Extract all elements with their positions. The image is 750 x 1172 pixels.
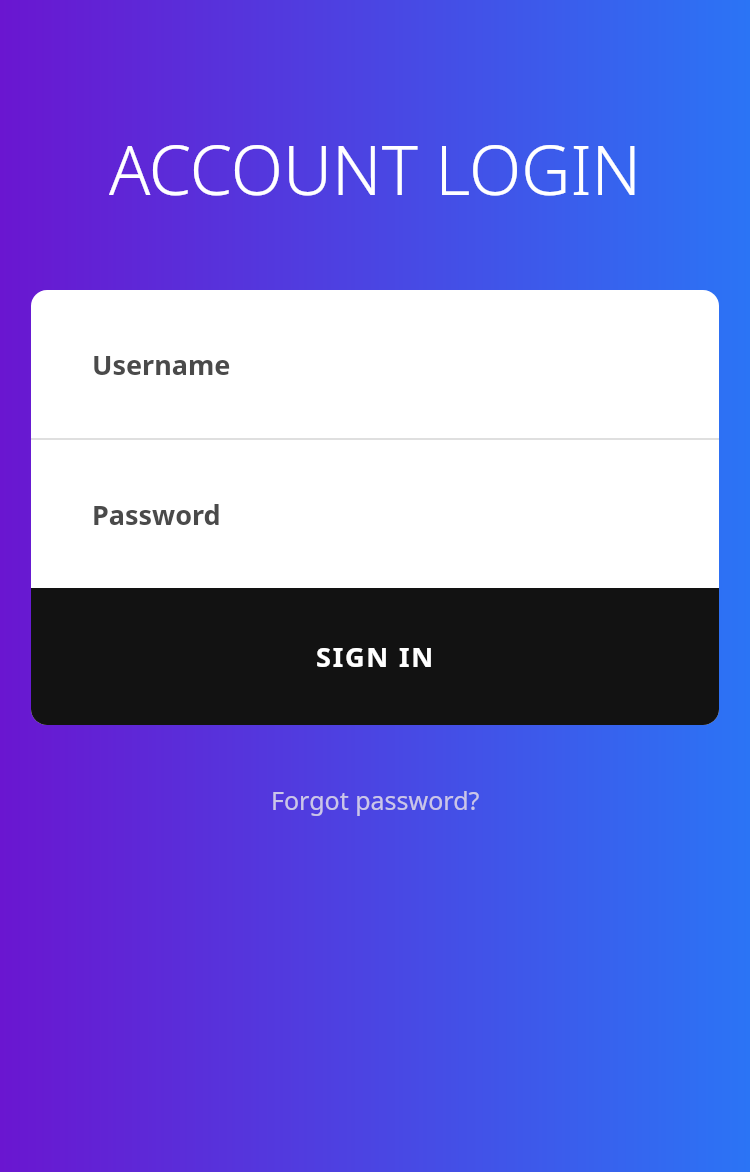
staticText: Forgot password? bbox=[271, 783, 480, 817]
staticText: Password bbox=[92, 496, 221, 533]
button[interactable]: Forgot password? bbox=[271, 783, 480, 817]
button[interactable]: SIGN IN bbox=[31, 588, 719, 725]
button[interactable]: Username bbox=[31, 290, 719, 438]
button[interactable]: Password bbox=[31, 440, 719, 588]
staticText: Username bbox=[92, 346, 231, 383]
staticText: SIGN IN bbox=[316, 638, 435, 675]
staticText: ACCOUNT LOGIN bbox=[0, 122, 750, 215]
